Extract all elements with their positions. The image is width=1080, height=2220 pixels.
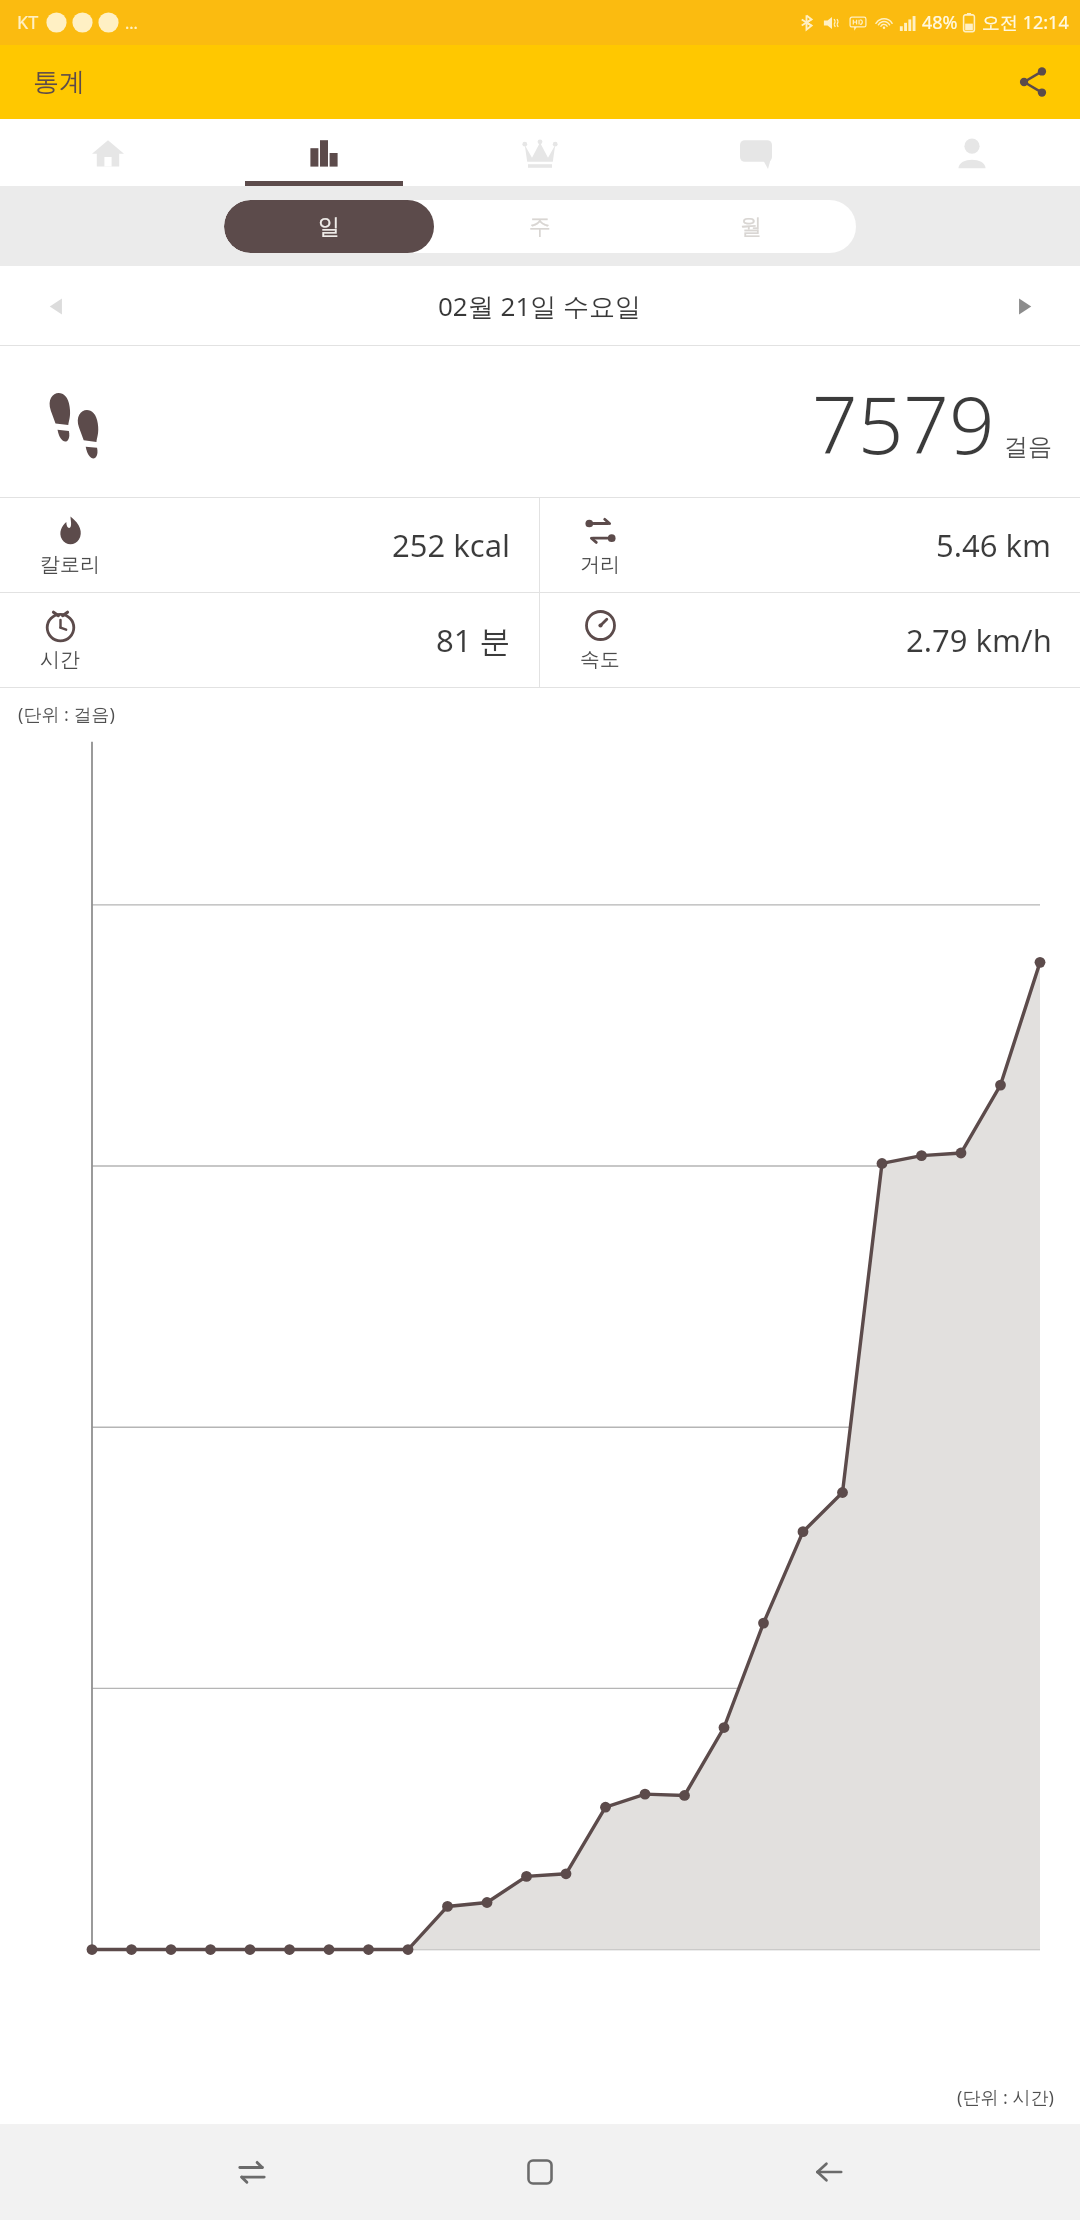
- button[interactable]: 시간: [0, 593, 539, 687]
- button[interactable]: Next day: [970, 266, 1080, 346]
- staticText: (단위 : 걸음): [18, 702, 115, 727]
- staticText: 오전 12:14: [982, 10, 1069, 35]
- staticText: 통계: [33, 66, 85, 99]
- staticText: 속도: [580, 647, 620, 672]
- button[interactable]: Profile: [864, 119, 1080, 186]
- staticText: 7579: [812, 368, 995, 477]
- button[interactable]: Previous day: [0, 266, 110, 346]
- button[interactable]: Home: [503, 2135, 577, 2209]
- staticText: 48%: [922, 10, 958, 35]
- staticText: 월: [740, 213, 762, 241]
- staticText: 81 분: [436, 619, 511, 661]
- staticText: ...: [125, 12, 138, 34]
- staticText: 02월 21일 수요일: [438, 288, 642, 324]
- button[interactable]: Chat: [648, 119, 864, 186]
- staticText: 시간: [40, 647, 80, 672]
- button[interactable]: Home: [0, 119, 216, 186]
- button[interactable]: Statistics: [216, 119, 432, 186]
- staticText: 거리: [580, 552, 620, 577]
- staticText: 칼로리: [40, 552, 100, 577]
- staticText: 걸음: [1004, 432, 1052, 462]
- button[interactable]: 거리: [540, 498, 1080, 592]
- button[interactable]: Share: [1006, 55, 1060, 109]
- staticText: 2.79 km/h: [906, 619, 1052, 661]
- staticText: 252 kcal: [392, 524, 511, 566]
- button[interactable]: Ranking: [432, 119, 648, 186]
- staticText: (단위 : 시간): [957, 2085, 1054, 2110]
- button[interactable]: 칼로리: [0, 498, 539, 592]
- button[interactable]: 주: [434, 200, 645, 253]
- button[interactable]: 속도: [540, 593, 1080, 687]
- staticText: 5.46 km: [936, 524, 1052, 566]
- staticText: 주: [529, 213, 551, 241]
- button[interactable]: 월: [645, 200, 856, 253]
- button[interactable]: Back: [792, 2135, 866, 2209]
- button[interactable]: Recents: [215, 2135, 289, 2209]
- button[interactable]: 일: [224, 200, 434, 253]
- staticText: 일: [318, 213, 340, 241]
- staticText: KT: [17, 10, 39, 35]
